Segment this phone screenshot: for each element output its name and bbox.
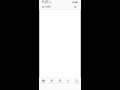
button[interactable]: Alerts <box>64 77 72 84</box>
staticText: Profile <box>74 82 79 84</box>
staticText: Alerts <box>66 82 71 84</box>
button[interactable]: Create <box>56 77 64 84</box>
button[interactable]: Home <box>39 77 47 84</box>
staticText: Create <box>57 82 63 84</box>
button[interactable]: More <box>74 6 81 8</box>
button[interactable]: Browse <box>47 77 56 84</box>
staticText: Home <box>41 82 45 84</box>
button[interactable]: Account <box>39 6 45 8</box>
staticText: Browse <box>49 82 55 84</box>
button[interactable]: Profile <box>72 77 81 84</box>
staticText: 9:41 <box>42 0 49 4</box>
staticText: Explore <box>45 6 51 8</box>
